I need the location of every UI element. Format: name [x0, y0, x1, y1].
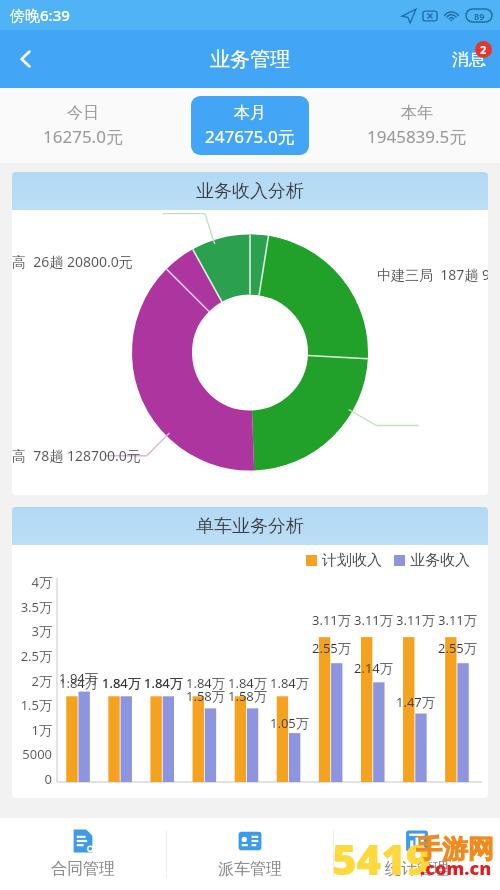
- button[interactable]: Back: [0, 33, 52, 85]
- staticText: 1.84万: [144, 674, 183, 692]
- staticText: 1.94万: [59, 669, 98, 687]
- staticText: 计划收入: [322, 551, 382, 570]
- staticText: 统计管理: [385, 859, 449, 879]
- staticText: 16275.0元: [43, 125, 123, 148]
- staticText: 手游网: [416, 833, 494, 866]
- staticText: 3.11万: [354, 611, 393, 629]
- staticText: 1.84万: [144, 674, 183, 692]
- staticText: 1.5万: [20, 696, 52, 714]
- button[interactable]: 统计管理: [334, 818, 500, 890]
- staticText: 1.58万: [186, 687, 225, 705]
- staticText: 1.84万: [270, 674, 309, 692]
- staticText: 消息: [452, 49, 486, 70]
- staticText: 傍晚6:39: [10, 5, 70, 25]
- staticText: 东高 26趟 20800.0元: [12, 252, 133, 271]
- staticText: 247675.0元: [205, 125, 295, 148]
- button[interactable]: 消息: [444, 39, 494, 80]
- staticText: 业务收入分析: [196, 180, 304, 203]
- staticText: 1.84万: [102, 674, 141, 692]
- staticText: 1.84万: [59, 674, 98, 692]
- button[interactable]: 合同管理: [0, 818, 166, 890]
- staticText: 1.84万: [102, 674, 141, 692]
- staticText: 3.11万: [438, 611, 477, 629]
- staticText: 3.11万: [312, 611, 351, 629]
- staticText: 1.47万: [396, 693, 435, 711]
- staticText: 5000: [22, 745, 52, 763]
- staticText: 3.11万: [396, 611, 435, 629]
- staticText: 89: [474, 10, 485, 22]
- staticText: 合同管理: [51, 859, 115, 879]
- staticText: 1万: [31, 721, 52, 739]
- staticText: 1945839.5元: [367, 125, 467, 148]
- staticText: 2万: [31, 672, 52, 690]
- staticText: 业务管理: [210, 47, 290, 72]
- staticText: 3万: [31, 622, 52, 640]
- staticText: 单车业务分析: [196, 515, 304, 538]
- button[interactable]: 今日: [29, 96, 137, 155]
- staticText: 3.5万: [20, 598, 52, 616]
- button[interactable]: 本月: [191, 96, 309, 155]
- staticText: 1.58万: [228, 687, 267, 705]
- staticText: 2.55万: [312, 639, 351, 657]
- staticText: 2.5万: [20, 647, 52, 665]
- staticText: 2.14万: [354, 659, 393, 677]
- staticText: 1.84万: [228, 674, 267, 692]
- button[interactable]: 本年: [353, 96, 481, 155]
- staticText: .com.cn: [420, 856, 492, 881]
- staticText: 2: [480, 42, 487, 57]
- staticText: 东高 78趟 128700.0元: [12, 446, 141, 465]
- staticText: 派车管理: [218, 859, 282, 879]
- staticText: 今日: [67, 103, 99, 123]
- staticText: 1.05万: [270, 714, 309, 732]
- staticText: 1.84万: [186, 674, 225, 692]
- staticText: 本年: [401, 103, 433, 123]
- staticText: 2.55万: [438, 639, 477, 657]
- staticText: 业务收入: [410, 551, 470, 570]
- staticText: 0: [44, 770, 52, 788]
- staticText: 5419: [332, 830, 431, 887]
- button[interactable]: 派车管理: [167, 818, 333, 890]
- staticText: 4万: [31, 573, 52, 591]
- staticText: 中建三局 187趟 98: [377, 265, 488, 284]
- staticText: 本月: [234, 103, 266, 123]
